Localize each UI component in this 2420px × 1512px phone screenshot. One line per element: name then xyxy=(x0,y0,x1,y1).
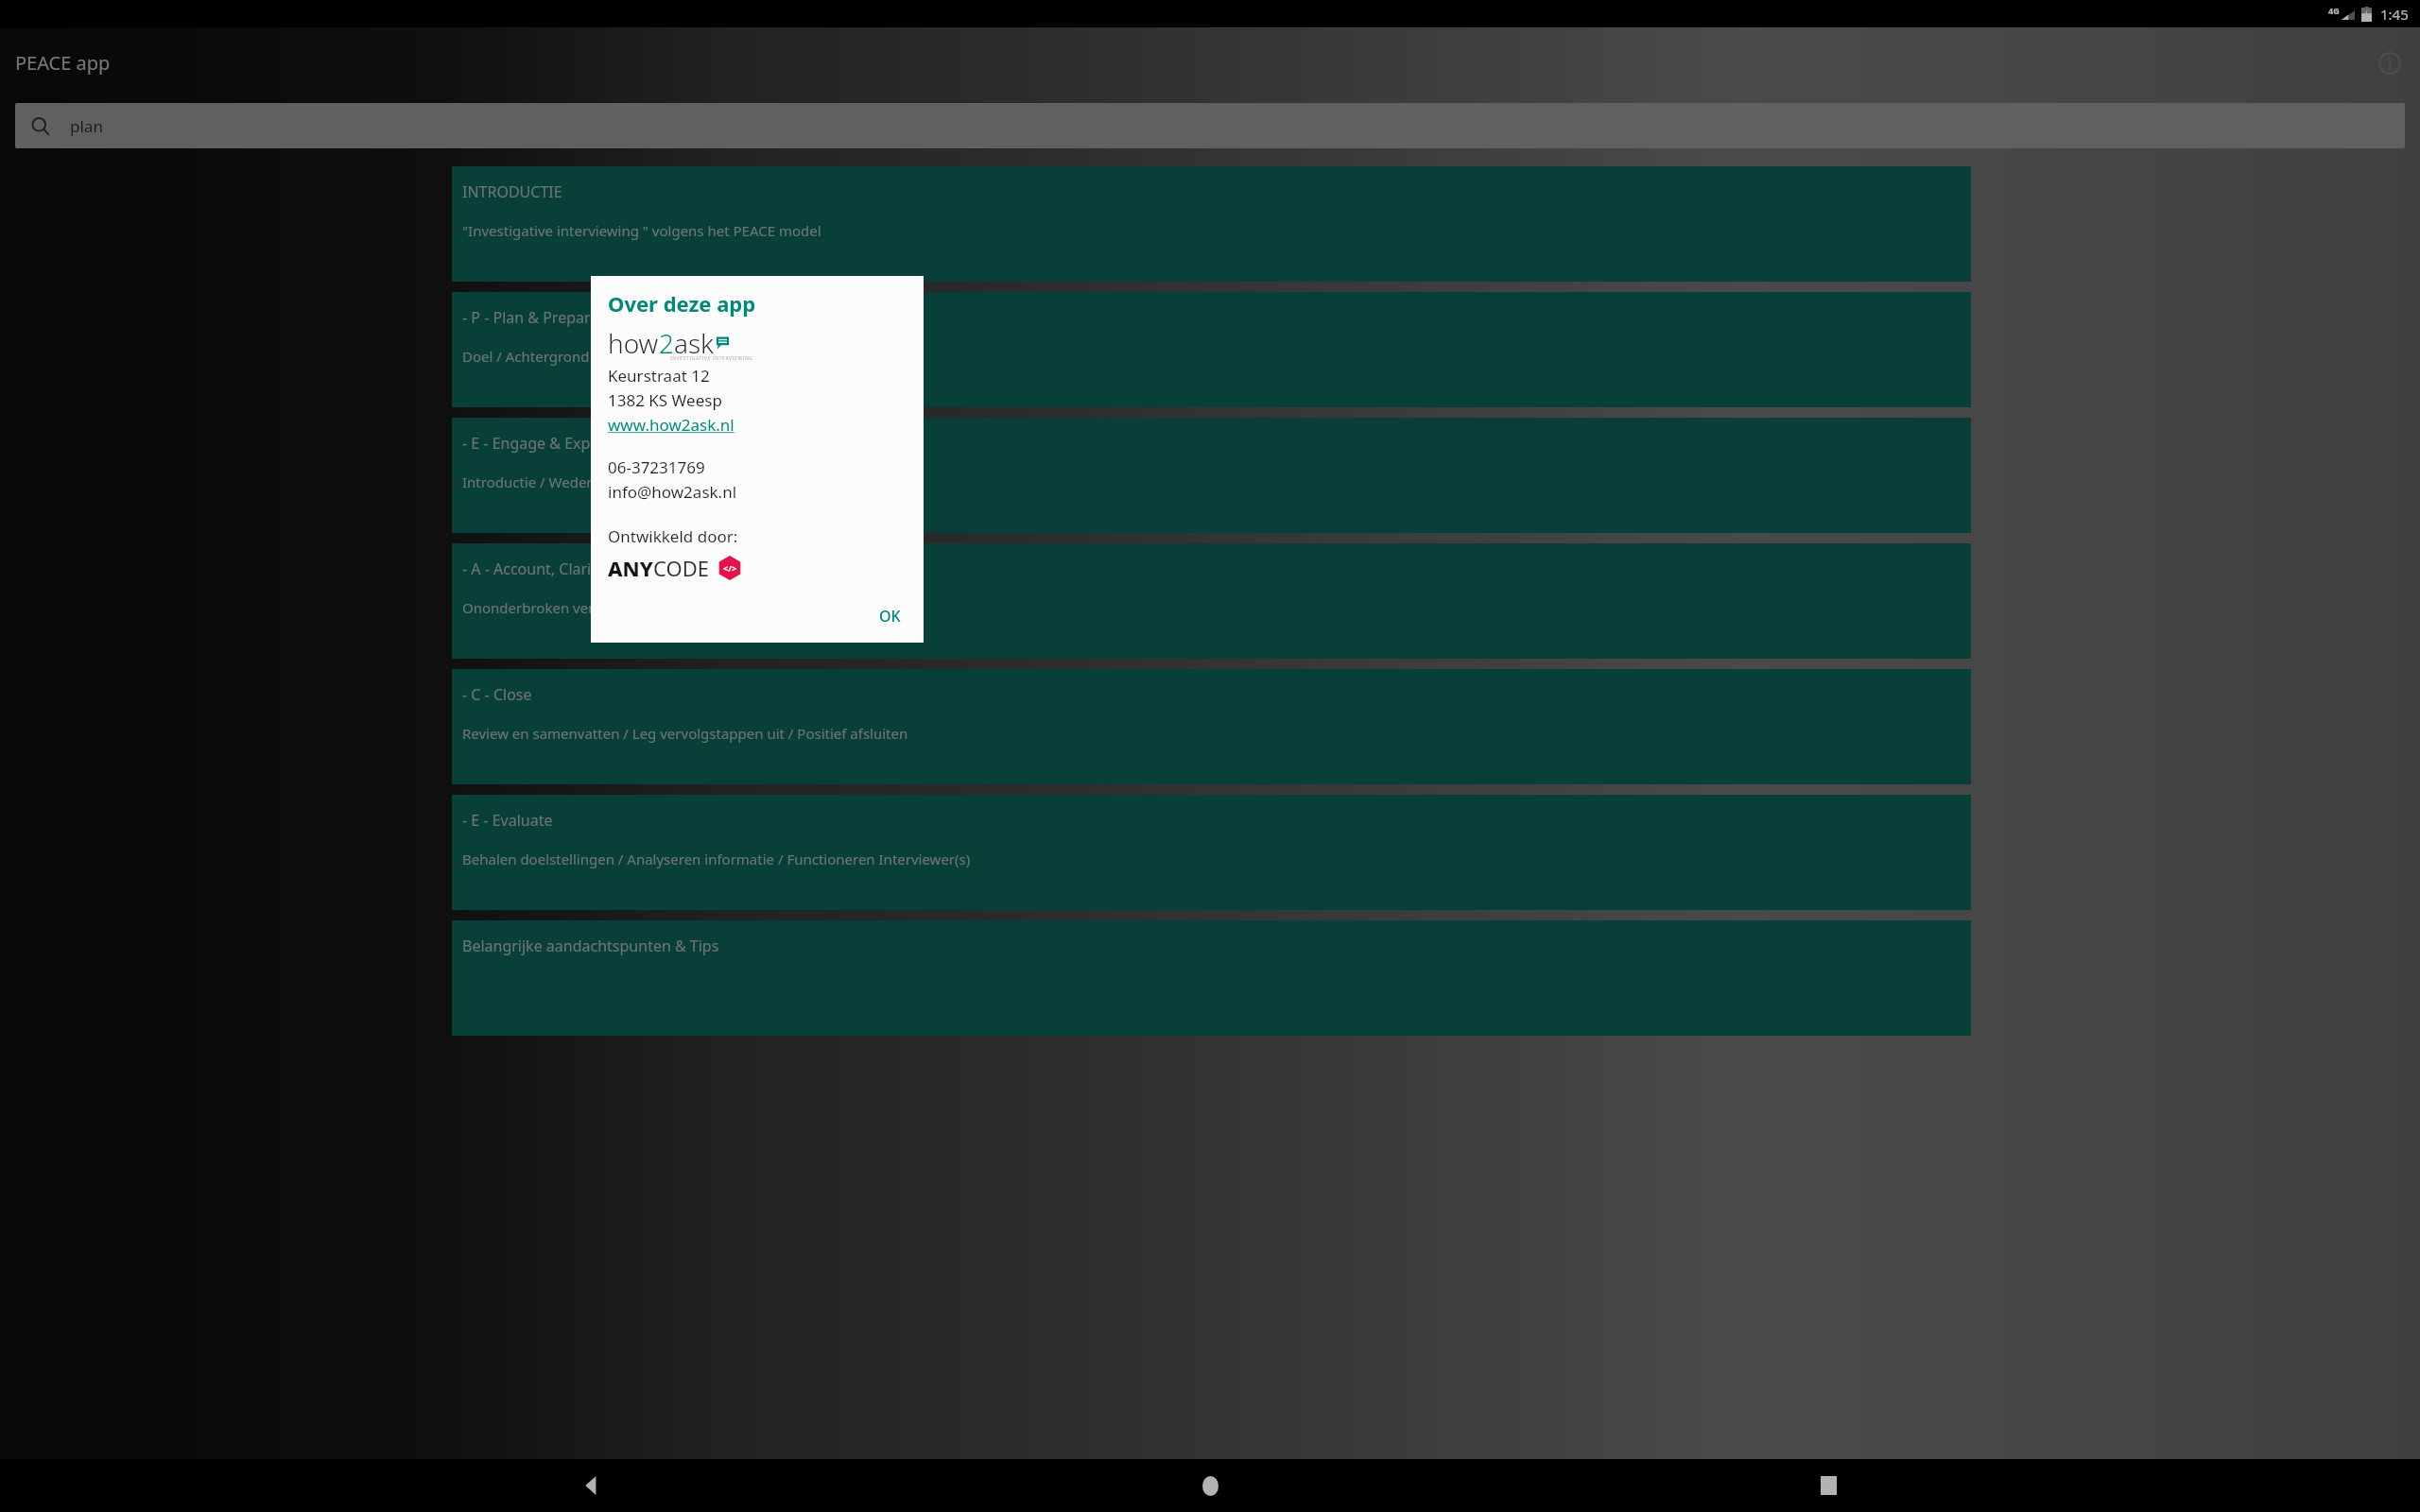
staticText: Introductie / Wederzijdse verwachtingen … xyxy=(462,472,849,491)
button[interactable]: - P - Plan & Prepare xyxy=(452,292,1971,407)
staticText: ask xyxy=(674,325,714,361)
staticText: Belangrijke aandachtspunten & Tips xyxy=(462,936,719,956)
staticText: info@how2ask.nl xyxy=(608,481,737,503)
staticText: INTRODUCTIE xyxy=(462,181,562,202)
staticText: 4G xyxy=(2328,5,2340,16)
button[interactable]: Home xyxy=(1184,1459,1236,1512)
button[interactable]: Belangrijke aandachtspunten & Tips xyxy=(452,920,1971,1036)
button[interactable]: plan xyxy=(15,103,2405,148)
staticText: Ononderbroken verhaal / Verdiepen / Niet… xyxy=(462,598,890,617)
staticText: www.how2ask.nl xyxy=(608,414,735,436)
staticText: Keurstraat 12 xyxy=(608,365,710,387)
button[interactable]: - E - Engage & Explain xyxy=(452,418,1971,533)
staticText: Over deze app xyxy=(608,289,756,318)
button[interactable]: www.how2ask.nl xyxy=(608,414,735,436)
button[interactable]: Back xyxy=(565,1459,618,1512)
staticText: Behalen doelstellingen / Analyseren info… xyxy=(462,850,971,868)
staticText: how xyxy=(608,325,659,361)
staticText: - C - Close xyxy=(462,684,532,705)
button[interactable]: Over deze app xyxy=(2369,43,2411,84)
staticText: 1:45 xyxy=(2380,5,2409,24)
staticText: - A - Account, Clarify, Challenge xyxy=(462,558,683,579)
staticText: Ontwikkeld door: xyxy=(608,525,738,547)
staticText: "Investigative interviewing " volgens he… xyxy=(462,221,821,240)
staticText: 1382 KS Weesp xyxy=(608,389,722,411)
button[interactable]: - C - Close xyxy=(452,669,1971,784)
staticText: PEACE app xyxy=(15,50,111,76)
staticText: - E - Engage & Explain xyxy=(462,433,616,454)
staticText: 2 xyxy=(659,325,674,361)
staticText: Doel / Achtergrond / Strategie / Vragen … xyxy=(462,347,857,366)
staticText: OK xyxy=(879,606,901,627)
button[interactable]: INTRODUCTIE xyxy=(452,166,1971,282)
button[interactable]: - E - Evaluate xyxy=(452,795,1971,910)
button[interactable]: Recent apps xyxy=(1802,1459,1855,1512)
staticText: INVESTIGATIVE INTERVIEWING xyxy=(670,355,753,362)
button[interactable]: - A - Account, Clarify, Challenge xyxy=(452,543,1971,659)
staticText: ANY xyxy=(608,554,653,582)
staticText: Review en samenvatten / Leg vervolgstapp… xyxy=(462,724,908,743)
staticText: - E - Evaluate xyxy=(462,810,553,831)
staticText: 06-37231769 xyxy=(608,456,705,478)
button[interactable]: OK xyxy=(866,597,914,635)
staticText: </> xyxy=(723,562,737,574)
staticText: - P - Plan & Prepare xyxy=(462,307,599,328)
staticText: CODE xyxy=(653,554,709,582)
staticText: plan xyxy=(70,115,103,137)
